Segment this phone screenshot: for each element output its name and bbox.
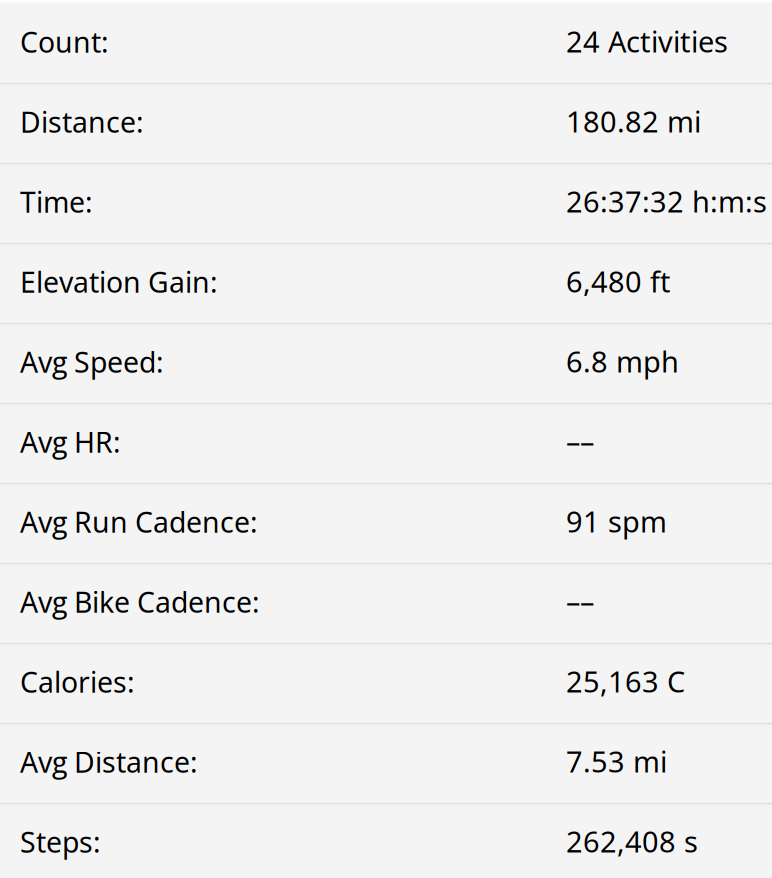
staticText: 91 spm — [566, 501, 667, 541]
staticText: Steps: — [20, 822, 101, 861]
button[interactable]: Elevation Gain: 6,480 ft — [0, 242, 772, 322]
button[interactable]: Time: 26:37:32 h:m:s — [0, 162, 772, 242]
staticText: Avg Distance: — [20, 742, 198, 781]
staticText: Count: — [20, 22, 109, 61]
button[interactable]: Avg Speed: 6.8 mph — [0, 322, 772, 402]
staticText: 180.82 mi — [566, 101, 701, 141]
staticText: Time: — [20, 182, 93, 221]
button[interactable]: Calories: 25,163 C — [0, 642, 772, 722]
staticText: –– — [566, 581, 594, 621]
button[interactable]: Count: 24 Activities — [0, 2, 772, 82]
staticText: 24 Activities — [566, 21, 728, 61]
button[interactable]: Avg Distance: 7.53 mi — [0, 722, 772, 802]
staticText: Elevation Gain: — [20, 262, 218, 301]
staticText: –– — [566, 421, 594, 461]
button[interactable]: Steps: 262,408 s — [0, 802, 772, 878]
staticText: Avg Bike Cadence: — [20, 582, 260, 621]
staticText: 262,408 s — [566, 821, 698, 861]
staticText: Calories: — [20, 662, 135, 701]
button[interactable]: Avg Bike Cadence: –– — [0, 562, 772, 642]
button[interactable]: Distance: 180.82 mi — [0, 82, 772, 162]
button[interactable]: Avg HR: –– — [0, 402, 772, 482]
staticText: 6.8 mph — [566, 341, 679, 381]
button[interactable]: Avg Run Cadence: 91 spm — [0, 482, 772, 562]
staticText: Avg HR: — [20, 422, 121, 461]
staticText: Avg Speed: — [20, 342, 164, 381]
staticText: 26:37:32 h:m:s — [566, 181, 767, 221]
staticText: Avg Run Cadence: — [20, 502, 258, 541]
staticText: 6,480 ft — [566, 261, 671, 301]
staticText: 7.53 mi — [566, 741, 667, 781]
staticText: 25,163 C — [566, 661, 685, 701]
staticText: Distance: — [20, 102, 144, 141]
